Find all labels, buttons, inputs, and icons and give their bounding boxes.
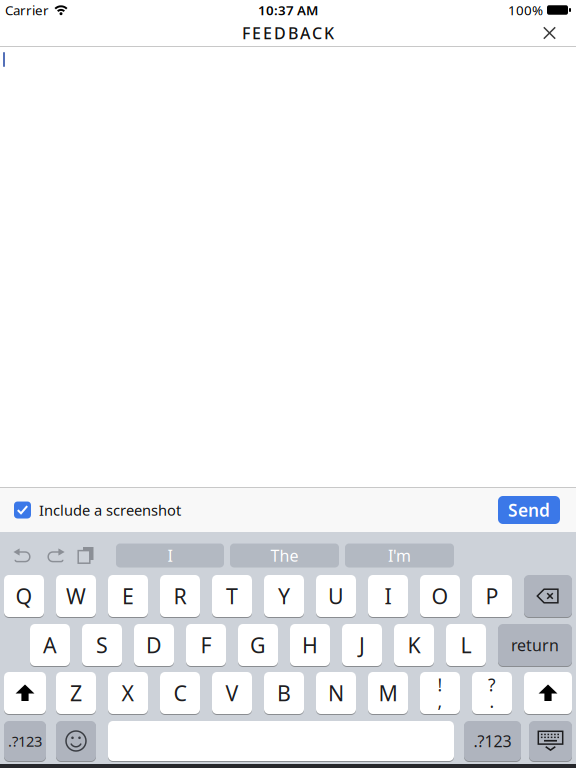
staticText: N	[328, 679, 344, 707]
staticText: .	[489, 690, 494, 713]
staticText: Z	[70, 679, 82, 707]
staticText: ?	[488, 673, 496, 696]
button[interactable]: return	[498, 624, 572, 666]
button[interactable]: E	[108, 575, 148, 617]
staticText: B	[277, 679, 291, 707]
button[interactable]: S	[82, 624, 122, 666]
button[interactable]: H	[290, 624, 330, 666]
staticText: 10:37 AM	[258, 1, 318, 19]
staticText: J	[359, 631, 365, 659]
button[interactable]	[524, 672, 572, 714]
staticText: Carrier	[5, 1, 49, 19]
staticText: H	[302, 631, 318, 659]
staticText: P	[485, 582, 498, 610]
button[interactable]: I	[116, 543, 224, 567]
staticText: Q	[15, 582, 32, 610]
button[interactable]: N	[316, 672, 356, 714]
button[interactable]: R	[160, 575, 200, 617]
button[interactable]: ?	[472, 672, 512, 714]
button[interactable]	[543, 26, 576, 39]
button[interactable]: V	[212, 672, 252, 714]
button[interactable]: M	[368, 672, 408, 714]
staticText: F E E D B A C K	[242, 22, 334, 44]
button[interactable]	[47, 548, 65, 563]
button[interactable]: I	[368, 575, 408, 617]
staticText: T	[226, 582, 238, 610]
staticText: ,	[437, 690, 442, 713]
button[interactable]: D	[134, 624, 174, 666]
button[interactable]: Include a screenshot	[0, 500, 181, 520]
button[interactable]: !	[420, 672, 460, 714]
button[interactable]	[524, 575, 572, 617]
button[interactable]: P	[472, 575, 512, 617]
staticText: D	[146, 631, 162, 659]
staticText: Send	[508, 498, 550, 521]
staticText: 100%	[508, 1, 543, 19]
staticText: .?123	[473, 730, 511, 752]
button[interactable]	[529, 721, 572, 761]
button[interactable]: A	[30, 624, 70, 666]
staticText: !	[437, 673, 442, 696]
button[interactable]: X	[108, 672, 148, 714]
button[interactable]: The	[230, 543, 339, 567]
button[interactable]: U	[316, 575, 356, 617]
button[interactable]: .?123	[4, 721, 46, 761]
button[interactable]: W	[56, 575, 96, 617]
staticText: E	[122, 582, 134, 610]
staticText: The	[270, 545, 298, 566]
staticText: V	[225, 679, 238, 707]
button[interactable]: J	[342, 624, 382, 666]
staticText: U	[328, 582, 344, 610]
staticText: S	[96, 631, 108, 659]
staticText: Y	[278, 582, 290, 610]
button[interactable]: Z	[56, 672, 96, 714]
staticText: C	[173, 679, 186, 707]
staticText: O	[431, 582, 448, 610]
button[interactable]: .?123	[464, 721, 521, 761]
staticText: M	[378, 679, 397, 707]
staticText: W	[66, 582, 86, 610]
staticText: I'm	[388, 545, 411, 566]
staticText: R	[173, 582, 186, 610]
button[interactable]: Send	[498, 496, 560, 524]
staticText: I	[384, 582, 391, 610]
staticText: I	[167, 545, 172, 566]
button[interactable]: I'm	[345, 543, 454, 567]
staticText: return	[511, 634, 559, 656]
staticText: K	[407, 631, 420, 659]
staticText: Include a screenshot	[39, 500, 181, 520]
button[interactable]: Q	[4, 575, 44, 617]
staticText: A	[43, 631, 57, 659]
staticText: X	[121, 679, 134, 707]
button[interactable]	[4, 672, 46, 714]
button[interactable]: O	[420, 575, 460, 617]
button[interactable]	[77, 547, 95, 564]
staticText: .?123	[8, 731, 42, 751]
button[interactable]: T	[212, 575, 252, 617]
staticText: L	[460, 631, 471, 659]
button[interactable]	[13, 548, 31, 563]
button[interactable]: C	[160, 672, 200, 714]
staticText: F	[200, 631, 211, 659]
button[interactable]: L	[446, 624, 486, 666]
staticText: G	[250, 631, 266, 659]
button[interactable]: G	[238, 624, 278, 666]
button[interactable]: Y	[264, 575, 304, 617]
button[interactable]: F	[186, 624, 226, 666]
button[interactable]: B	[264, 672, 304, 714]
button[interactable]: K	[394, 624, 434, 666]
button[interactable]	[56, 721, 96, 761]
